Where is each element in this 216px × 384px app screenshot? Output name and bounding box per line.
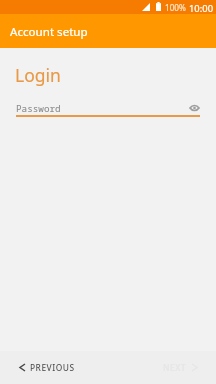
- button[interactable]: Show password: [186, 100, 202, 116]
- button[interactable]: PREVIOUS: [0, 356, 87, 379]
- staticText: Password: [16, 102, 61, 115]
- staticText: NEXT: [163, 362, 187, 373]
- staticText: Login: [15, 63, 61, 87]
- staticText: 10:00: [189, 2, 214, 15]
- staticText: 100%: [165, 2, 186, 13]
- staticText: Account setup: [10, 24, 88, 40]
- staticText: PREVIOUS: [30, 362, 75, 373]
